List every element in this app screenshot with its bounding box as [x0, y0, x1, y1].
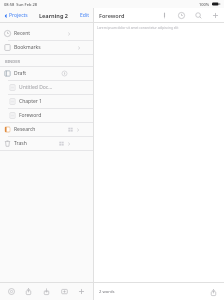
- button[interactable]: Research: [0, 123, 93, 136]
- staticText: Learning 2: [39, 12, 68, 19]
- button[interactable]: Edit: [79, 10, 90, 21]
- button[interactable]: Add: [75, 285, 88, 298]
- staticText: Recent: [14, 30, 31, 37]
- staticText: Projects: [9, 12, 28, 19]
- button[interactable]: Recent: [0, 27, 93, 40]
- button[interactable]: Formatting: [159, 10, 170, 21]
- staticText: Foreword: [99, 12, 125, 19]
- button[interactable]: New folder: [58, 285, 71, 298]
- staticText: Foreword: [19, 112, 42, 119]
- button[interactable]: History: [176, 10, 187, 21]
- button[interactable]: Trash: [0, 137, 93, 150]
- button[interactable]: Chapter 1: [0, 95, 93, 108]
- staticText: Trash: [14, 140, 27, 147]
- staticText: Bookmarks: [14, 44, 41, 51]
- button[interactable]: Search: [193, 10, 204, 21]
- button[interactable]: Share: [22, 285, 35, 298]
- staticText: 2 words: [99, 289, 115, 295]
- staticText: Untitled Document: [19, 84, 54, 91]
- button[interactable]: Import: [40, 285, 53, 298]
- staticText: Draft: [14, 70, 26, 77]
- button[interactable]: Untitled Document: [0, 81, 93, 94]
- staticText: 08:58 Sun Feb 28: [4, 2, 38, 7]
- button[interactable]: Draft: [0, 67, 93, 80]
- staticText: Research: [14, 126, 36, 133]
- staticText: Chapter 1: [19, 98, 42, 105]
- button[interactable]: Bookmarks: [0, 41, 93, 54]
- staticText: Edit: [80, 12, 89, 19]
- staticText: 100%: [199, 2, 210, 7]
- button[interactable]: Foreword: [0, 109, 93, 122]
- button[interactable]: Settings: [5, 285, 18, 298]
- button[interactable]: Add: [210, 10, 221, 21]
- staticText: Lorem ipsum dolor sit amet consectetur a…: [97, 26, 179, 30]
- button[interactable]: Share: [207, 286, 219, 298]
- button[interactable]: Projects: [3, 10, 29, 21]
- staticText: BINDER: [5, 59, 21, 64]
